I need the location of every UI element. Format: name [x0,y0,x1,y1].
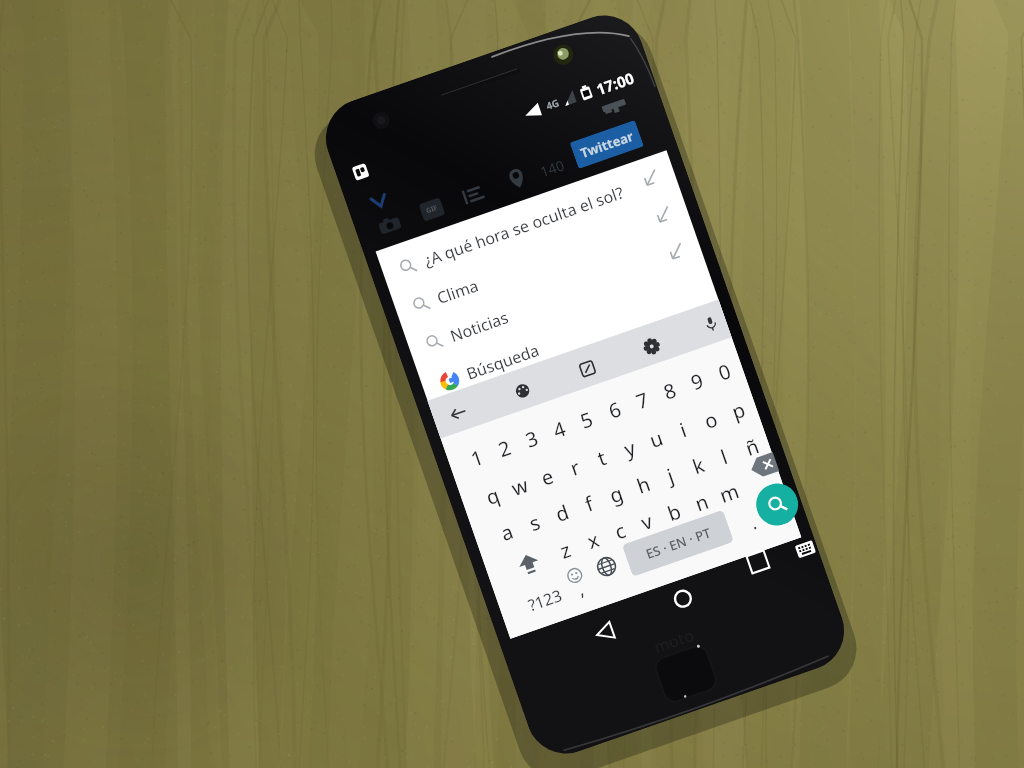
button[interactable]: 7 [624,381,660,419]
staticText: u [646,424,667,454]
staticText: s [525,508,544,537]
staticText: 8 [660,376,680,406]
button[interactable]: y [611,429,647,467]
staticText: Búsqueda [463,339,542,385]
button[interactable]: 3 [514,420,550,457]
staticText: v [637,507,657,536]
staticText: z [556,536,574,565]
staticText: e [537,462,557,492]
button[interactable]: 4 [541,410,577,448]
staticText: moto [651,624,697,658]
button[interactable]: Change language [591,551,621,581]
staticText: 1 [467,443,487,473]
staticText: h [633,470,654,500]
button[interactable]: b [656,493,692,531]
staticText: j [663,462,678,489]
button[interactable]: u [638,420,674,457]
staticText: ?123 [525,584,565,616]
staticText: GIF [425,203,439,216]
button[interactable]: 0 [706,353,743,390]
staticText: ñ [742,432,763,462]
button[interactable]: v [628,503,665,540]
button[interactable]: Themes [514,382,531,400]
button[interactable]: t [584,439,620,476]
button[interactable]: 8 [651,372,688,409]
button[interactable]: a [489,513,525,550]
staticText: p [728,396,749,425]
button[interactable]: Settings [642,337,661,356]
button[interactable]: f [570,485,606,522]
button[interactable]: Twittear [570,120,644,169]
button[interactable]: Back [591,618,619,646]
button[interactable]: . [738,508,767,537]
button[interactable]: o [692,401,729,438]
button[interactable]: n [683,484,719,521]
staticText: k [689,451,708,480]
staticText: Clima [434,274,482,309]
staticText: a [497,518,517,547]
button[interactable]: i [665,410,701,448]
button[interactable]: Voice input [702,315,720,333]
button[interactable]: Camera [376,211,404,239]
button[interactable]: j [652,456,689,494]
button[interactable]: Shift [514,549,544,580]
staticText: . [747,510,759,534]
staticText: 140 [538,155,567,181]
button[interactable]: Clima [391,195,693,329]
button[interactable]: Backspace [745,449,782,483]
staticText: 4 [549,415,569,444]
button[interactable]: Emoji [560,561,589,590]
staticText: l [717,443,732,470]
button[interactable]: d [544,494,580,531]
staticText: m [716,477,743,509]
staticText: x [584,526,603,555]
button[interactable]: Location [505,166,529,190]
button[interactable]: Search [750,478,804,531]
staticText: c [611,517,629,545]
button[interactable]: e [529,458,565,495]
button[interactable]: l [706,437,742,475]
staticText: 4G [544,95,561,113]
button[interactable]: q [474,477,510,514]
staticText: t [594,444,610,472]
button[interactable]: Búsqueda [418,272,720,405]
button[interactable]: s [516,503,553,541]
button[interactable]: Poll [461,182,486,208]
button[interactable]: p [720,391,756,429]
button[interactable]: 2 [486,429,523,467]
button[interactable]: Noticias [404,233,706,367]
button[interactable]: , [565,574,595,604]
button[interactable]: z [547,531,583,568]
button[interactable]: Close toolbar [448,403,469,423]
staticText: 17:00 [593,67,637,99]
staticText: n [691,488,712,518]
button[interactable]: 6 [597,391,633,428]
button[interactable]: ES · EN · PT [622,510,734,577]
button[interactable]: 1 [459,439,495,476]
button[interactable]: ?123 [519,580,571,620]
button[interactable]: Stickers [579,360,596,377]
button[interactable]: GIF [419,197,445,222]
button[interactable]: Use suggestion [637,164,665,192]
button[interactable]: g [598,475,634,513]
button[interactable]: k [680,447,716,484]
button[interactable]: c [602,512,638,549]
button[interactable]: Home [669,585,697,613]
button[interactable]: m [710,474,747,511]
button[interactable]: h [625,466,661,503]
staticText: w [508,471,532,502]
staticText: b [664,497,685,527]
button[interactable]: ñ [734,428,770,465]
button[interactable]: Switch keyboard [795,540,816,558]
button[interactable]: w [502,467,538,505]
button[interactable]: 9 [679,362,715,400]
button[interactable]: Recent apps [746,550,769,573]
button[interactable]: r [556,448,593,486]
staticText: 3 [522,424,542,454]
button[interactable]: 5 [568,401,605,438]
button[interactable]: Use suggestion [662,238,690,266]
button[interactable]: Use suggestion [649,201,677,229]
button[interactable]: ¿A qué hora se oculta el sol? [378,158,680,291]
staticText: Noticias [447,306,512,347]
button[interactable]: x [574,521,611,559]
